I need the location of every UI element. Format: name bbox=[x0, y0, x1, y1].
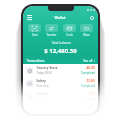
staticText: Scan bbox=[32, 33, 38, 37]
staticText: See all › bbox=[83, 59, 95, 63]
staticText: -48.20 bbox=[85, 66, 95, 70]
button[interactable]: Cards bbox=[61, 23, 78, 38]
staticText: Pending bbox=[84, 97, 95, 101]
staticText: Grocery Store bbox=[36, 66, 58, 70]
button[interactable]: Salary bbox=[23, 77, 98, 90]
staticText: Completed bbox=[81, 84, 95, 88]
button[interactable]: Notifications bbox=[88, 14, 95, 21]
staticText: Total balance bbox=[51, 41, 71, 45]
button[interactable]: Menu bbox=[26, 14, 33, 21]
staticText: Yesterday bbox=[36, 84, 49, 88]
button[interactable]: Scan bbox=[26, 23, 43, 38]
staticText: -7.50 bbox=[87, 92, 95, 96]
staticText: Wallet bbox=[54, 15, 66, 20]
staticText: -12.60 bbox=[85, 79, 95, 83]
staticText: Transactions bbox=[26, 59, 45, 63]
staticText: Salary bbox=[36, 79, 46, 83]
staticText: Parking bbox=[36, 92, 49, 96]
staticText: Transfer bbox=[46, 33, 57, 37]
button[interactable]: Subscription bbox=[23, 103, 98, 114]
button[interactable]: See all › bbox=[83, 59, 95, 63]
staticText: $ 12,480.50 bbox=[44, 47, 77, 55]
staticText: Today 09:24 bbox=[36, 71, 52, 75]
button[interactable]: More bbox=[78, 23, 95, 38]
staticText: More bbox=[83, 33, 90, 37]
button[interactable]: Grocery Store bbox=[23, 64, 98, 77]
staticText: Completed bbox=[81, 71, 95, 75]
button[interactable]: Transfer bbox=[43, 23, 60, 38]
staticText: Cards bbox=[66, 33, 73, 37]
